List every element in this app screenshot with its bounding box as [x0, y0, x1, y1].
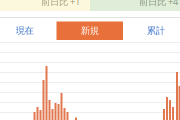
staticText: 前日比 +4 — [139, 0, 178, 8]
staticText: 現在 — [15, 25, 33, 36]
button[interactable]: 累計 — [127, 21, 180, 40]
button[interactable]: 現在 — [0, 21, 49, 40]
button[interactable]: 新規 — [56, 21, 123, 40]
staticText: 累計 — [147, 25, 165, 36]
staticText: 前日比 +1 — [41, 0, 80, 8]
staticText: 新規 — [81, 25, 99, 36]
